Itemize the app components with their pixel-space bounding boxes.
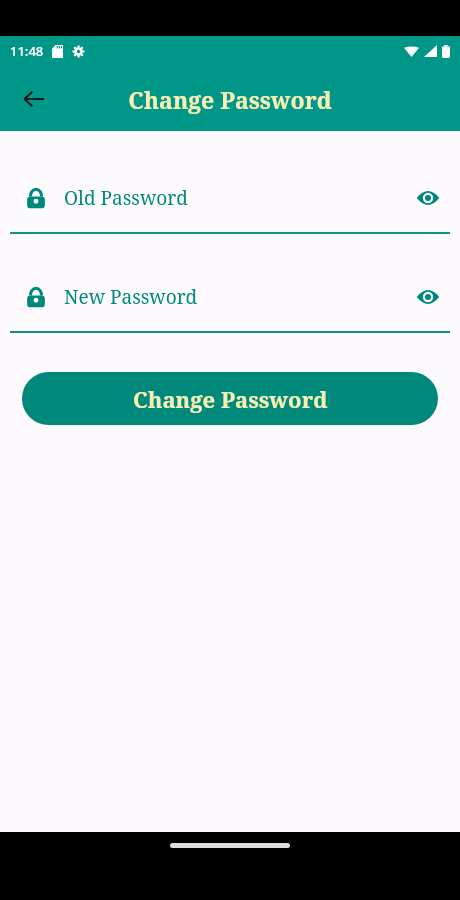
button[interactable]: Change Password [22,372,438,425]
button[interactable]: Show password [408,178,448,218]
button[interactable]: Show password [408,277,448,317]
staticText: Old Password [64,185,408,211]
staticText: New Password [64,284,408,310]
button[interactable]: Back [12,77,56,121]
staticText: Change Password [133,384,328,414]
staticText: Change Password [128,84,332,115]
button[interactable]: Old Password [0,178,460,218]
button[interactable]: New Password [0,277,460,317]
staticText: 11:48 [10,42,44,60]
